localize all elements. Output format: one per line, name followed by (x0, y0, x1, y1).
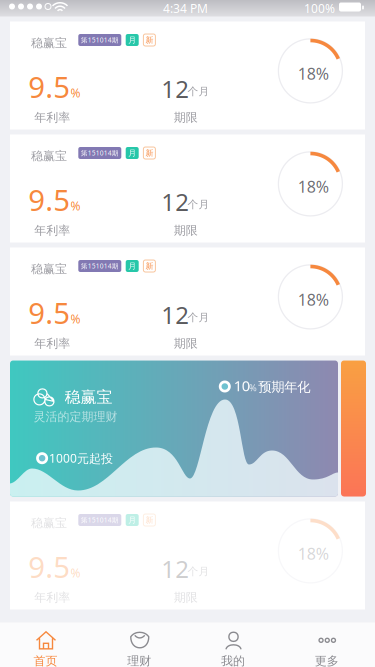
staticText: 新 (145, 148, 153, 158)
staticText: 稳赢宝 (64, 387, 112, 407)
staticText: 9.5 (28, 180, 70, 219)
staticText: 9.5 (28, 293, 70, 332)
staticText: 预期年化 (258, 379, 310, 395)
button[interactable]: 更多活动 (341, 360, 366, 496)
staticText: 18% (298, 289, 329, 310)
staticText: 期限 (174, 590, 198, 605)
button[interactable]: 稳赢宝 (10, 247, 365, 355)
staticText: 第151014期 (81, 36, 119, 44)
staticText: 18% (298, 543, 329, 564)
button[interactable]: 稳赢宝 (10, 501, 365, 609)
staticText: 18% (298, 176, 329, 197)
staticText: 我的 (221, 654, 245, 667)
staticText: 期限 (174, 336, 198, 351)
staticText: 年利率 (34, 223, 70, 238)
staticText: 12 (161, 553, 189, 585)
staticText: 新 (145, 515, 153, 525)
staticText: % (71, 198, 81, 214)
staticText: 月 (128, 35, 136, 45)
staticText: 年利率 (34, 590, 70, 605)
button[interactable]: 稳赢宝 (10, 360, 338, 496)
staticText: 年利率 (34, 336, 70, 351)
staticText: 月 (128, 261, 136, 271)
staticText: % (71, 85, 81, 101)
staticText: 月 (128, 148, 136, 158)
staticText: 9.5 (28, 67, 70, 106)
staticText: 100% (304, 0, 335, 16)
staticText: 稳赢宝 (31, 516, 67, 530)
staticText: 个月 (188, 565, 210, 578)
button[interactable]: 稳赢宝 (10, 21, 365, 129)
staticText: 稳赢宝 (31, 36, 67, 50)
staticText: 12 (161, 299, 189, 331)
staticText: 18% (298, 63, 329, 84)
button[interactable]: 理财 (94, 622, 188, 667)
button[interactable]: 首页 (0, 622, 94, 667)
staticText: 首页 (33, 654, 57, 667)
staticText: % (249, 381, 257, 394)
staticText: 月 (128, 515, 136, 525)
staticText: 新 (145, 261, 153, 271)
staticText: 期限 (174, 223, 198, 238)
staticText: 第151014期 (81, 149, 119, 157)
staticText: 稳赢宝 (31, 262, 67, 276)
staticText: 灵活的定期理财 (33, 409, 117, 424)
button[interactable]: 更多 (281, 622, 375, 667)
staticText: 稳赢宝 (31, 149, 67, 163)
staticText: 个月 (188, 198, 210, 211)
staticText: 9.5 (28, 547, 70, 586)
staticText: 4:34 PM (163, 0, 208, 16)
staticText: 个月 (188, 311, 210, 324)
staticText: 新 (145, 35, 153, 45)
staticText: 第151014期 (81, 262, 119, 270)
staticText: 10 (234, 376, 250, 395)
staticText: 年利率 (34, 110, 70, 125)
staticText: 理财 (127, 654, 151, 667)
button[interactable]: 稳赢宝 (10, 134, 365, 242)
staticText: 第151014期 (81, 516, 119, 524)
button[interactable]: 我的 (187, 622, 281, 667)
staticText: 12 (161, 186, 189, 218)
staticText: 更多 (315, 654, 339, 667)
staticText: % (71, 565, 81, 581)
staticText: 12 (161, 73, 189, 105)
staticText: 期限 (174, 110, 198, 125)
staticText: 个月 (188, 85, 210, 98)
staticText: 1000元起投 (49, 450, 113, 466)
staticText: % (71, 311, 81, 327)
